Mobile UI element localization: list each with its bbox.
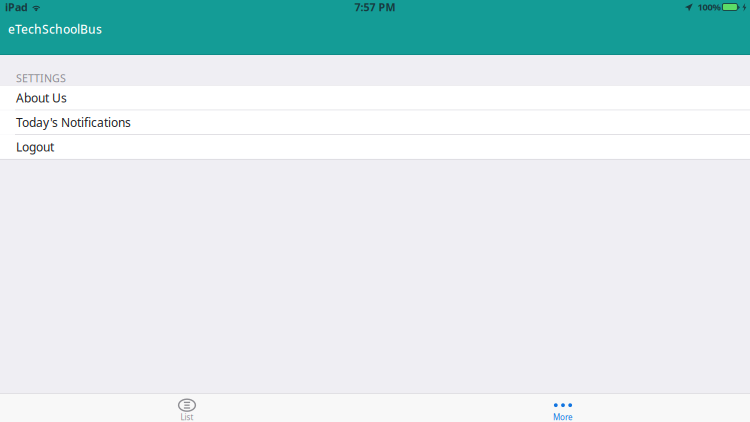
- button[interactable]: Today's Notifications: [0, 110, 750, 134]
- staticText: List: [180, 412, 193, 422]
- button[interactable]: Logout: [0, 135, 750, 159]
- staticText: iPad: [5, 0, 28, 14]
- staticText: About Us: [16, 90, 67, 106]
- staticText: Logout: [16, 139, 54, 155]
- button[interactable]: List: [148, 394, 226, 422]
- staticText: 7:57 PM: [354, 0, 395, 14]
- button[interactable]: About Us: [0, 86, 750, 110]
- staticText: SETTINGS: [16, 71, 66, 85]
- staticText: Today's Notifications: [16, 114, 131, 130]
- staticText: 100%: [697, 1, 720, 13]
- staticText: More: [553, 412, 573, 422]
- staticText: eTechSchoolBus: [8, 21, 102, 37]
- button[interactable]: More: [524, 394, 602, 422]
